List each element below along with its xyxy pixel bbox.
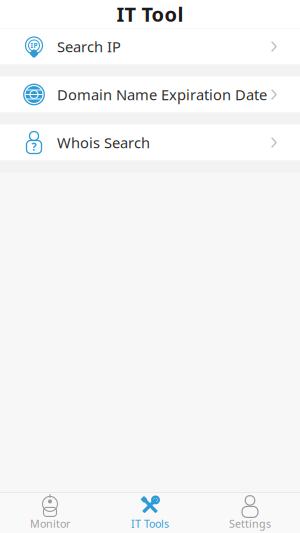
- staticText: IT Tools: [131, 516, 169, 531]
- button[interactable]: Settings: [200, 493, 300, 533]
- button[interactable]: Monitor: [0, 493, 100, 533]
- staticText: ?: [31, 139, 36, 154]
- staticText: Settings: [229, 516, 271, 531]
- staticText: Whois Search: [57, 133, 150, 152]
- staticText: Search IP: [57, 37, 121, 56]
- button[interactable]: IT Tools: [100, 493, 200, 533]
- button[interactable]: ?: [0, 124, 300, 160]
- button[interactable]: Domain Name Expiration Date: [0, 76, 300, 112]
- button[interactable]: IP: [0, 28, 300, 64]
- staticText: IP: [30, 41, 37, 50]
- staticText: Domain Name Expiration Date: [57, 85, 267, 104]
- staticText: IT Tool: [116, 1, 183, 27]
- staticText: Monitor: [30, 516, 70, 531]
